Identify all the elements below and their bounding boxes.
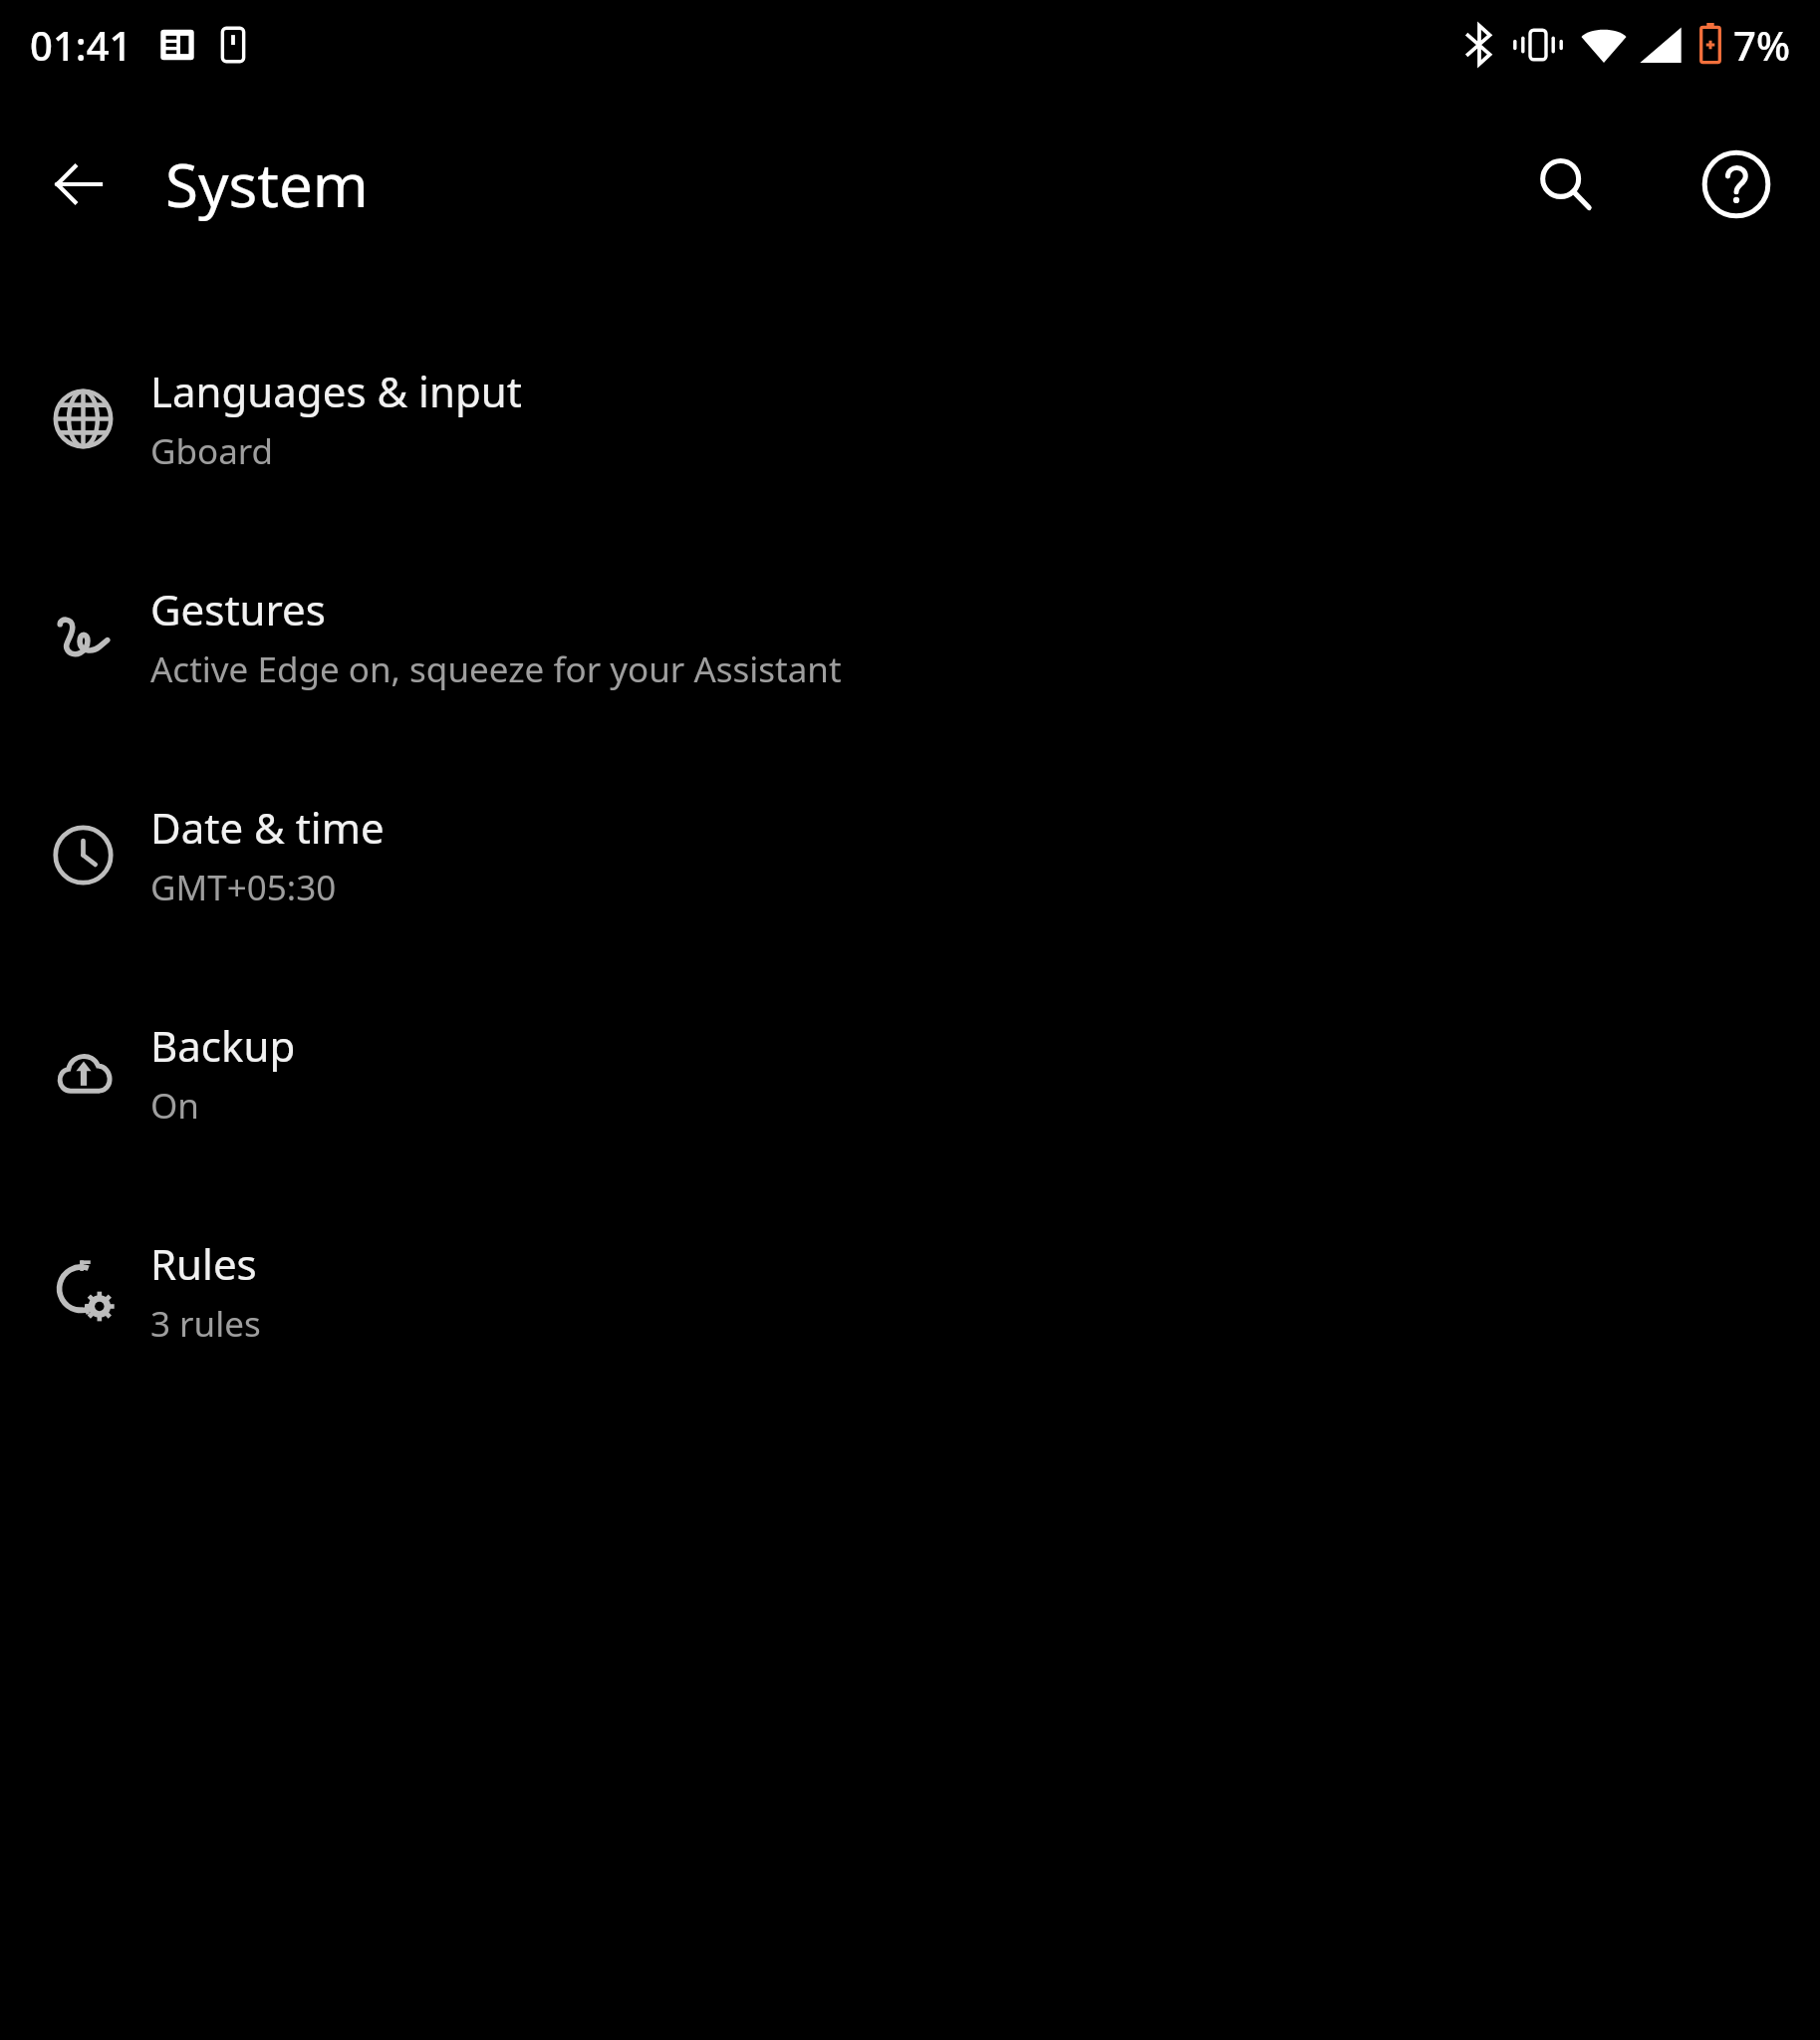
staticText: 7% (1733, 18, 1790, 72)
staticText: Backup (150, 1017, 296, 1074)
button[interactable]: Back (36, 141, 122, 227)
staticText: Languages & input (150, 363, 522, 419)
button[interactable]: Help (1689, 136, 1784, 232)
button[interactable]: Languages & input (0, 337, 1820, 501)
staticText: Gboard (150, 427, 274, 475)
button[interactable]: Backup (0, 991, 1820, 1155)
staticText: 3 rules (150, 1300, 261, 1348)
staticText: On (150, 1082, 199, 1130)
staticText: GMT+05:30 (150, 864, 337, 911)
button[interactable]: Gestures (0, 555, 1820, 719)
button[interactable]: Date & time (0, 773, 1820, 937)
staticText: System (165, 143, 1517, 225)
staticText: Gestures (150, 581, 326, 637)
staticText: Rules (150, 1235, 257, 1292)
button[interactable]: Rules (0, 1209, 1820, 1374)
staticText: Active Edge on, squeeze for your Assista… (150, 645, 842, 693)
staticText: Date & time (150, 799, 385, 856)
staticText: 01:41 (30, 18, 132, 72)
button[interactable]: Search (1517, 136, 1613, 232)
